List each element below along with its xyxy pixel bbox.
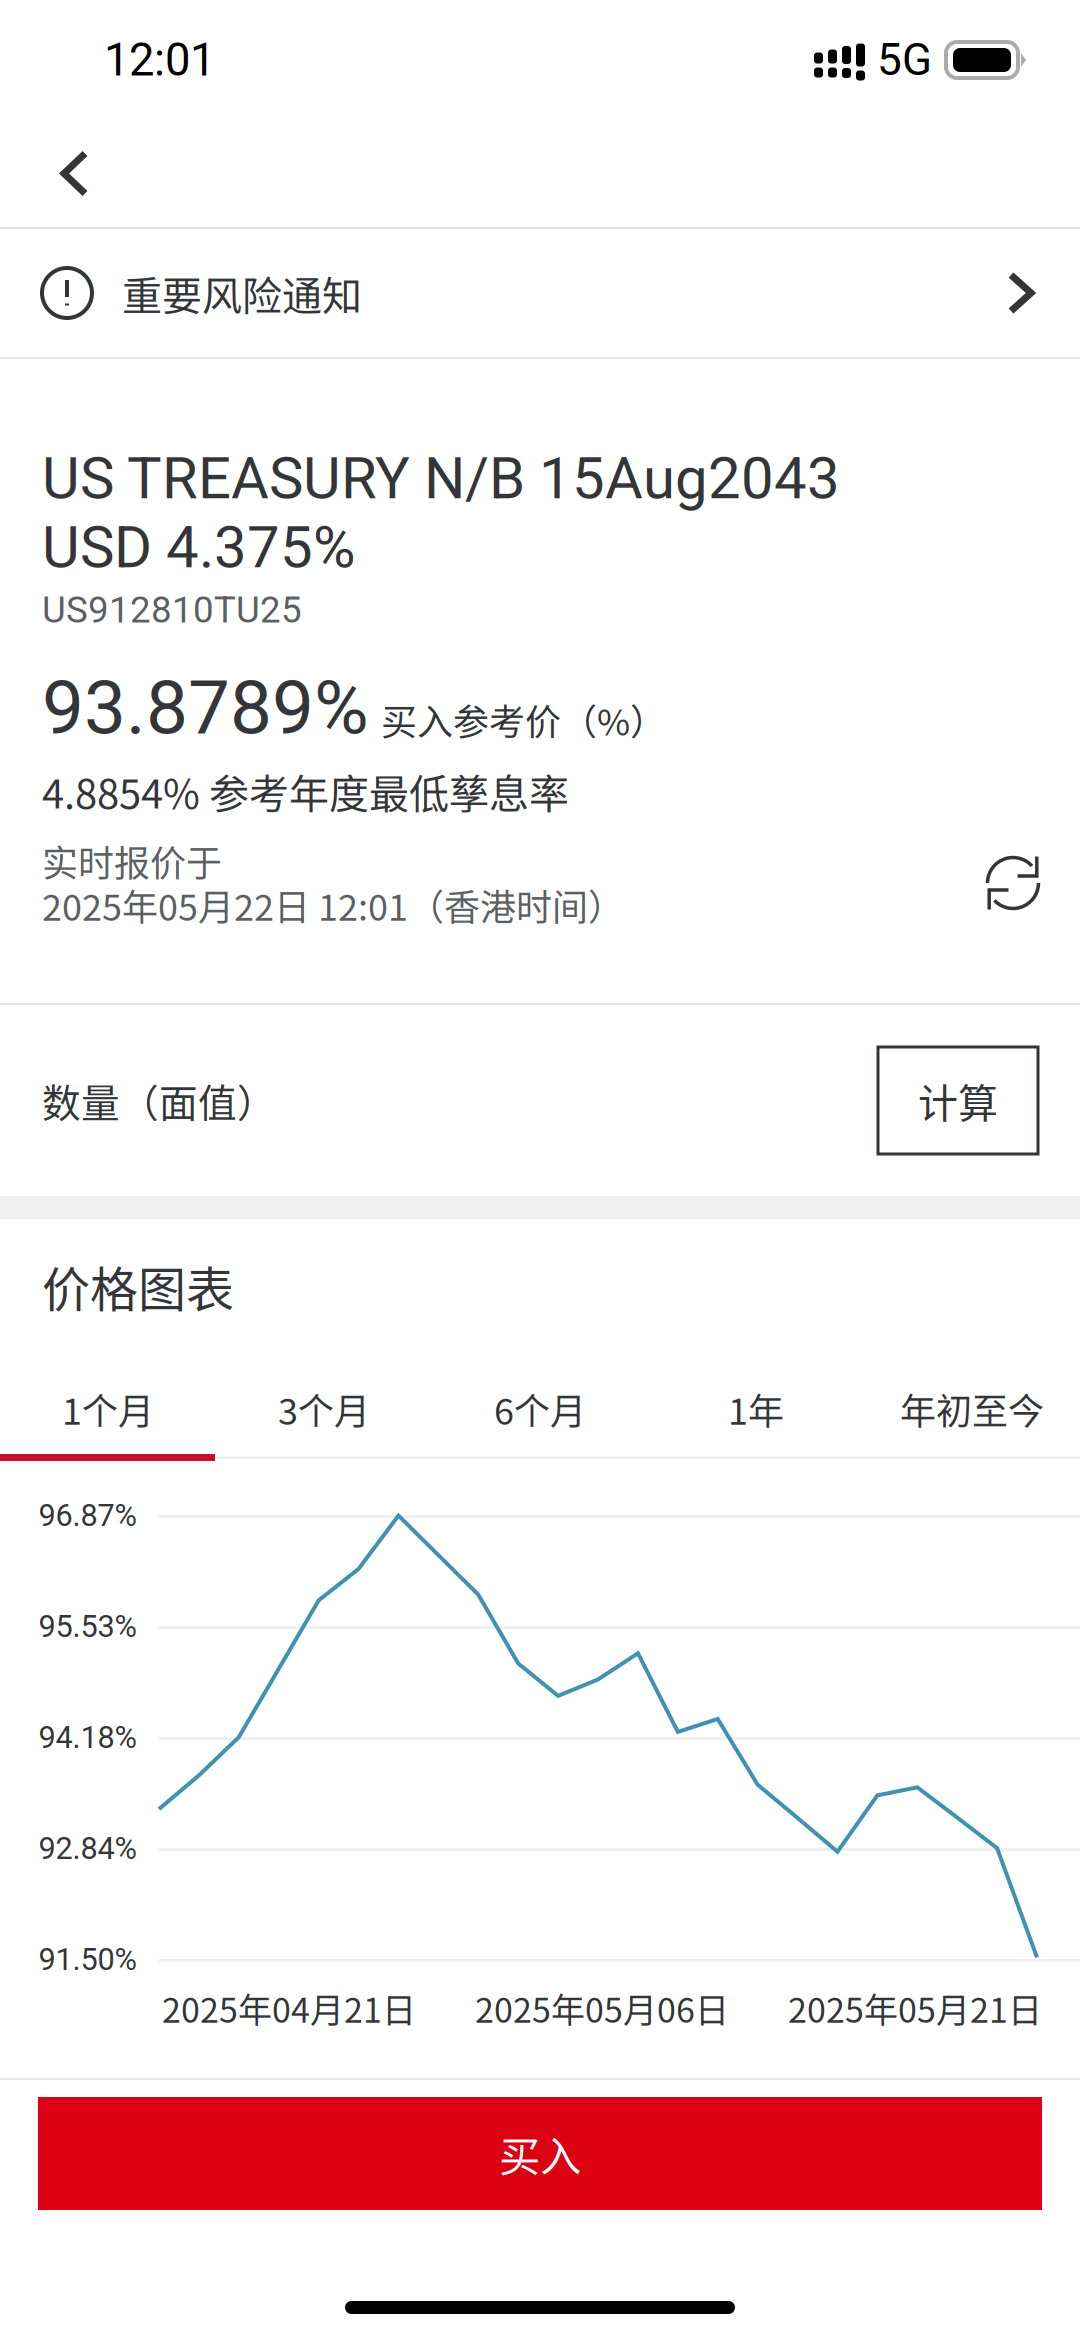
staticText: 12:01	[104, 33, 215, 86]
staticText: US TREASURY N/B 15Aug2043	[42, 444, 840, 512]
staticText: 4.8854% 参考年度最低孳息率	[42, 762, 569, 820]
staticText: 91.50%	[38, 1941, 136, 1977]
staticText: 重要风险通知	[122, 264, 362, 322]
button[interactable]: 1个月	[0, 1364, 216, 1454]
staticText: 买入参考价（%）	[381, 694, 666, 746]
staticText: 1年	[728, 1383, 784, 1435]
staticText: 94.18%	[38, 1719, 136, 1755]
staticText: 年初至今	[900, 1383, 1044, 1435]
staticText: 2025年05月22日 12:01（香港时间）	[42, 879, 624, 931]
staticText: 92.84%	[38, 1830, 136, 1866]
staticText: US912810TU25	[42, 588, 302, 631]
staticText: 计算	[918, 1071, 998, 1129]
staticText: 6个月	[494, 1383, 586, 1435]
staticText: 5G	[877, 34, 932, 86]
staticText: 数量（面值）	[42, 1072, 276, 1128]
staticText: 价格图表	[42, 1251, 234, 1321]
button[interactable]: 重要风险通知	[0, 229, 1080, 357]
staticText: USD 4.375%	[42, 513, 355, 581]
button[interactable]: Back	[0, 120, 170, 227]
staticText: 买入	[499, 2124, 581, 2183]
button[interactable]: 1年	[648, 1364, 864, 1454]
staticText: 2025年05月21日	[788, 1983, 1042, 2033]
button[interactable]: 计算	[878, 1047, 1038, 1154]
button[interactable]: 3个月	[216, 1364, 432, 1454]
staticText: 2025年05月06日	[475, 1983, 729, 2033]
staticText: 1个月	[62, 1383, 154, 1435]
button[interactable]: 买入	[38, 2097, 1042, 2210]
staticText: 3个月	[278, 1383, 370, 1435]
button[interactable]: 6个月	[432, 1364, 648, 1454]
button[interactable]: 年初至今	[864, 1364, 1080, 1454]
staticText: 93.8789%	[42, 664, 369, 752]
staticText: 2025年04月21日	[162, 1983, 416, 2033]
button[interactable]: Refresh	[988, 843, 1038, 923]
staticText: 95.53%	[38, 1608, 136, 1644]
staticText: 实时报价于	[42, 835, 222, 887]
staticText: 96.87%	[38, 1497, 136, 1533]
